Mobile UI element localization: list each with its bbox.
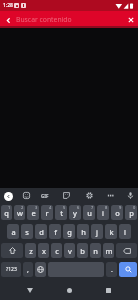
button[interactable]: x xyxy=(38,243,49,258)
button[interactable]: j xyxy=(91,224,103,239)
staticText: 9 xyxy=(119,205,122,210)
button[interactable]: Search xyxy=(119,262,137,277)
staticText: 1 xyxy=(8,205,11,210)
staticText: 6 xyxy=(77,205,80,210)
staticText: c xyxy=(55,246,59,256)
button[interactable]: Stickers xyxy=(60,189,73,202)
button[interactable]: q xyxy=(1,205,12,220)
staticText: GIF xyxy=(41,193,49,199)
staticText: n xyxy=(93,246,98,256)
button[interactable]: u xyxy=(83,205,95,220)
button[interactable]: Backspace xyxy=(116,243,137,258)
staticText: p xyxy=(129,208,134,218)
staticText: j xyxy=(96,227,98,237)
staticText: f xyxy=(54,227,57,237)
button[interactable]: Period xyxy=(106,262,117,277)
staticText: b xyxy=(80,246,85,256)
staticText: 1:28 xyxy=(3,2,13,9)
button[interactable]: f xyxy=(49,224,61,239)
button[interactable]: a xyxy=(7,224,19,239)
button[interactable]: v xyxy=(64,243,75,258)
button[interactable]: o xyxy=(111,205,123,220)
staticText: a xyxy=(11,227,16,237)
staticText: 4 xyxy=(49,205,52,210)
button[interactable]: l xyxy=(119,224,131,239)
staticText: o xyxy=(115,208,120,218)
button[interactable]: d xyxy=(35,224,47,239)
button[interactable]: Home xyxy=(61,282,77,298)
staticText: q xyxy=(4,208,9,218)
button[interactable]: r xyxy=(41,205,53,220)
button[interactable]: Back xyxy=(22,282,38,298)
button[interactable]: e xyxy=(27,205,39,220)
button[interactable]: k xyxy=(105,224,117,239)
button[interactable]: Emoji xyxy=(20,189,33,202)
button[interactable]: t xyxy=(55,205,67,220)
staticText: r xyxy=(45,208,49,218)
staticText: 3 xyxy=(35,205,38,210)
button[interactable]: c xyxy=(51,243,62,258)
staticText: i xyxy=(102,208,104,218)
button[interactable]: Voice input xyxy=(124,189,137,202)
staticText: 8 xyxy=(105,205,108,210)
button[interactable]: n xyxy=(90,243,101,258)
button[interactable]: Shift xyxy=(1,243,23,258)
button[interactable]: g xyxy=(63,224,75,239)
button[interactable]: Clear search xyxy=(124,13,138,27)
staticText: m xyxy=(105,246,113,256)
button[interactable]: Comma xyxy=(23,262,33,277)
staticText: v xyxy=(68,246,72,256)
button[interactable]: Back xyxy=(0,12,16,28)
button[interactable]: h xyxy=(77,224,89,239)
staticText: d xyxy=(39,227,44,237)
button[interactable]: i xyxy=(97,205,109,220)
staticText: ?123 xyxy=(6,266,17,273)
staticText: e xyxy=(31,208,36,218)
button[interactable]: p xyxy=(125,205,137,220)
staticText: h xyxy=(81,227,86,237)
staticText: 5 xyxy=(63,205,66,210)
staticText: 7 xyxy=(91,205,94,210)
staticText: y xyxy=(73,208,77,218)
button[interactable]: b xyxy=(77,243,88,258)
staticText: k xyxy=(109,227,114,237)
button[interactable]: More xyxy=(104,189,117,202)
button[interactable]: Expand toolbar xyxy=(2,190,14,202)
staticText: . xyxy=(111,265,113,275)
staticText: s xyxy=(25,227,29,237)
button[interactable]: y xyxy=(69,205,81,220)
staticText: g xyxy=(67,227,72,237)
staticText: u xyxy=(87,208,92,218)
button[interactable]: Recent apps xyxy=(100,282,116,298)
staticText: Buscar contenido xyxy=(16,15,72,24)
button[interactable]: w xyxy=(14,205,25,220)
staticText: x xyxy=(42,246,46,256)
staticText: 0 xyxy=(133,205,136,210)
staticText: z xyxy=(29,246,33,256)
staticText: , xyxy=(27,265,29,275)
button[interactable]: GIF xyxy=(38,189,51,202)
staticText: w xyxy=(17,208,23,218)
staticText: l xyxy=(124,227,126,237)
button[interactable]: z xyxy=(25,243,36,258)
button[interactable]: m xyxy=(103,243,114,258)
button[interactable]: ?123 xyxy=(1,262,21,277)
button[interactable]: Change language xyxy=(35,262,46,277)
button[interactable]: Settings xyxy=(83,189,96,202)
staticText: t xyxy=(60,208,63,218)
button[interactable]: s xyxy=(21,224,33,239)
staticText: 2 xyxy=(21,205,24,210)
